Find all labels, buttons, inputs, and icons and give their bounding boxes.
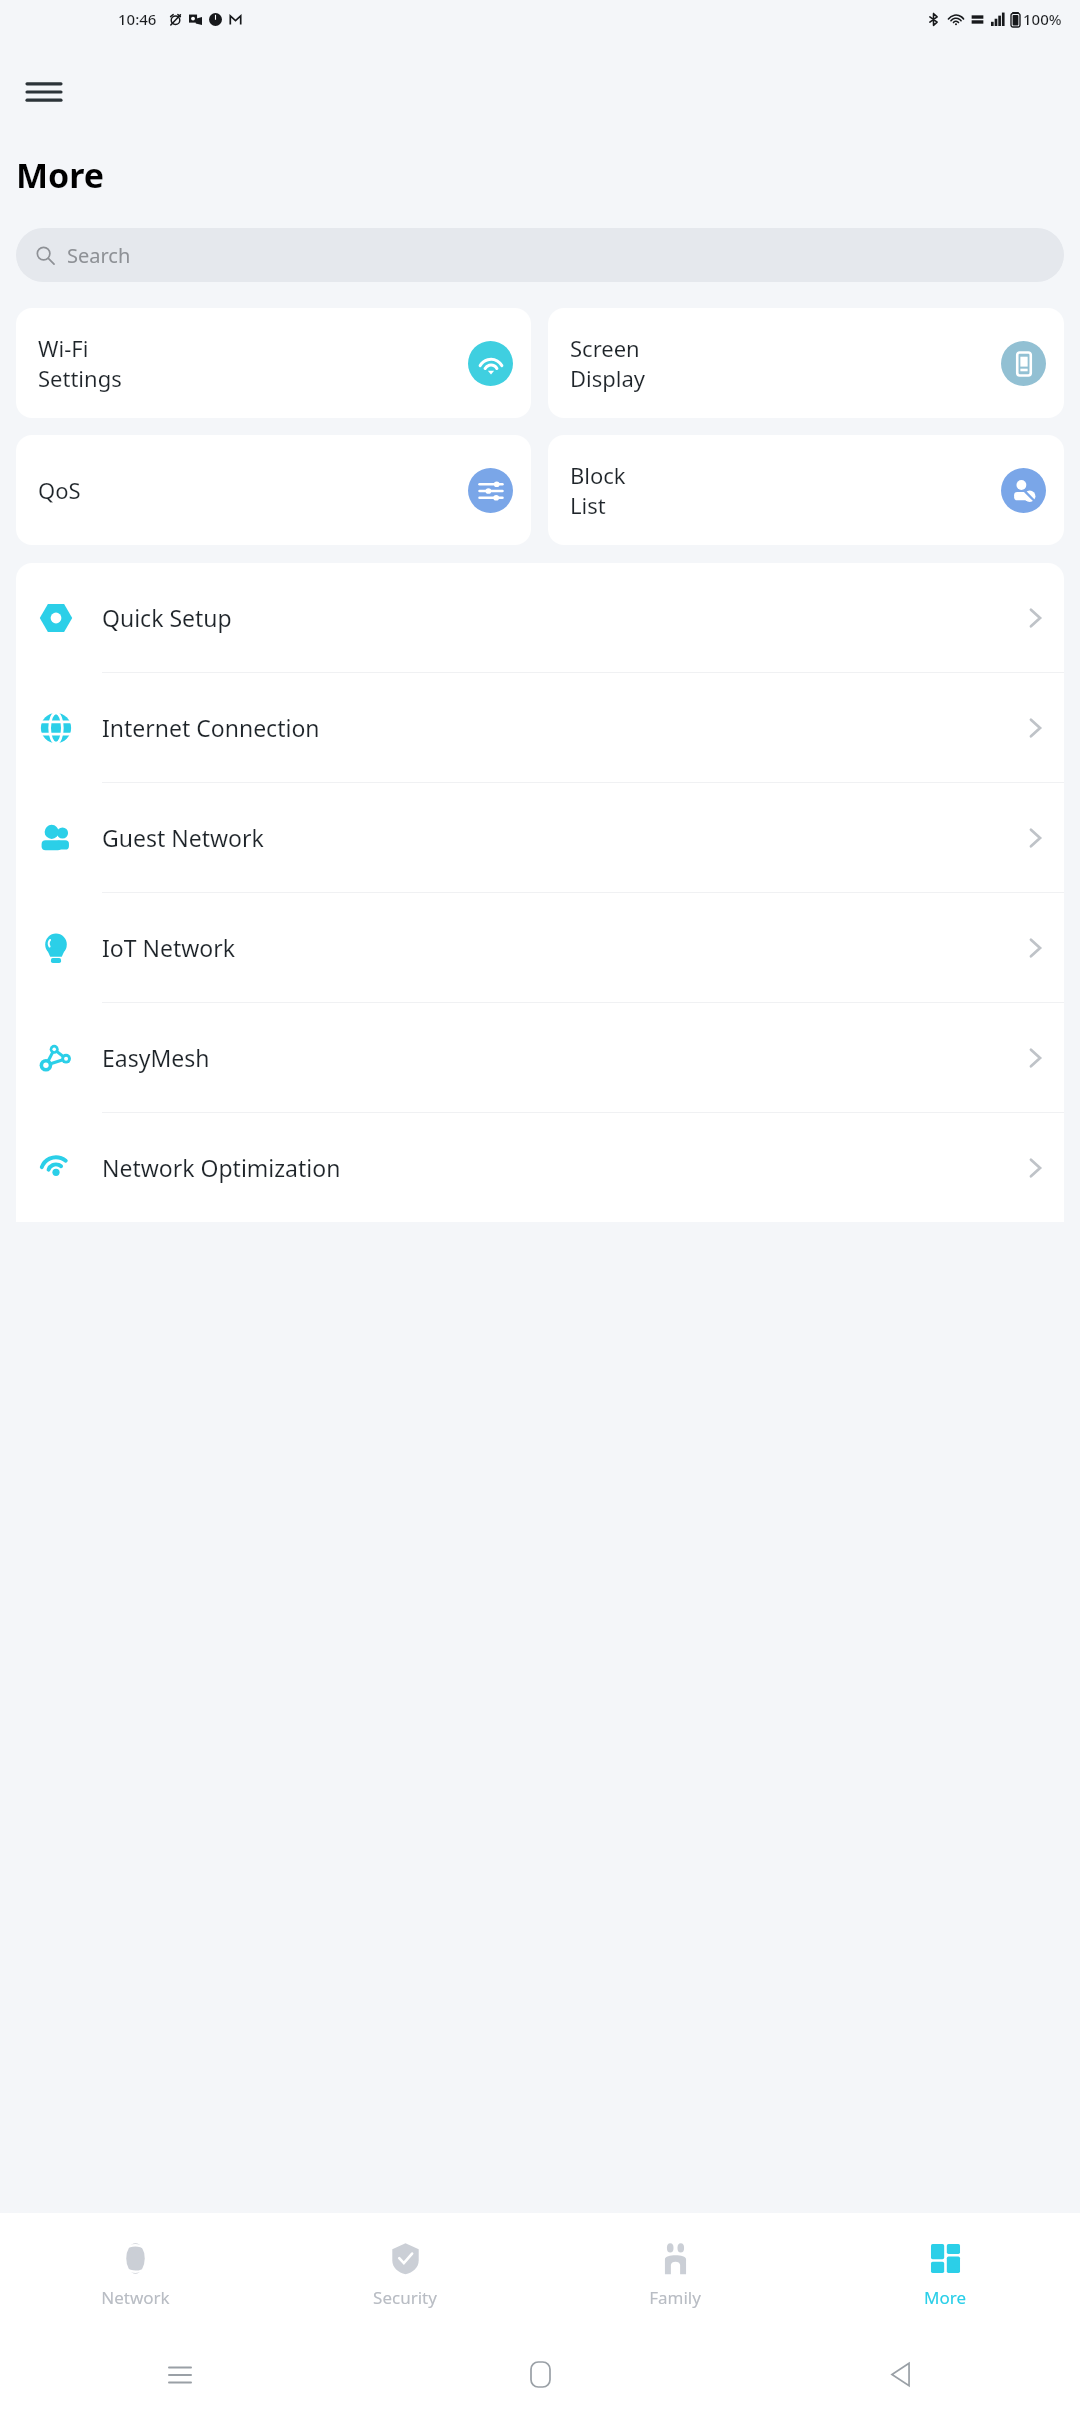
button[interactable]: More: [810, 2213, 1080, 2337]
button[interactable]: Quick Setup: [16, 563, 1064, 672]
staticText: EasyMesh: [102, 1042, 210, 1073]
staticText: More: [924, 2286, 966, 2309]
button[interactable]: Security: [270, 2213, 540, 2337]
button[interactable]: Search: [16, 228, 1064, 282]
staticText: More: [16, 152, 105, 198]
button[interactable]: QoS: [16, 435, 531, 545]
staticText: QoS: [38, 475, 81, 505]
button[interactable]: Wi-Fi: [16, 308, 531, 418]
staticText: 10:46: [118, 9, 157, 29]
button[interactable]: Recent apps: [0, 2337, 360, 2412]
staticText: Network Optimization: [102, 1152, 341, 1183]
staticText: Wi-Fi: [38, 333, 89, 363]
button[interactable]: IoT Network: [16, 893, 1064, 1002]
staticText: Security: [373, 2286, 437, 2309]
button[interactable]: Back: [720, 2337, 1080, 2412]
button[interactable]: Home: [360, 2337, 720, 2412]
button[interactable]: Network Optimization: [16, 1113, 1064, 1222]
staticText: Screen: [570, 333, 640, 363]
button[interactable]: Family: [540, 2213, 810, 2337]
staticText: Display: [570, 363, 646, 393]
staticText: Internet Connection: [102, 712, 320, 743]
button[interactable]: Screen: [548, 308, 1064, 418]
button[interactable]: Internet Connection: [16, 673, 1064, 782]
staticText: Guest Network: [102, 822, 264, 853]
staticText: Search: [67, 242, 131, 269]
staticText: Family: [649, 2286, 701, 2309]
staticText: Block: [570, 460, 626, 490]
staticText: Settings: [38, 363, 122, 393]
staticText: Quick Setup: [102, 602, 232, 633]
button[interactable]: Menu: [12, 60, 76, 124]
button[interactable]: Guest Network: [16, 783, 1064, 892]
button[interactable]: Network: [0, 2213, 270, 2337]
staticText: IoT Network: [102, 932, 236, 963]
staticText: 100%: [1023, 9, 1062, 29]
staticText: Network: [101, 2286, 170, 2309]
staticText: List: [570, 490, 606, 520]
button[interactable]: Block: [548, 435, 1064, 545]
button[interactable]: EasyMesh: [16, 1003, 1064, 1112]
